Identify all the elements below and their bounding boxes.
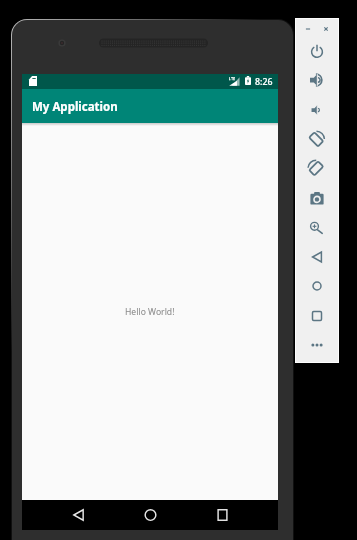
- button[interactable]: Back: [308, 248, 326, 266]
- button[interactable]: Screenshot: [308, 189, 326, 207]
- button[interactable]: Home: [308, 277, 326, 295]
- button[interactable]: Minimize: [302, 23, 314, 35]
- staticText: Hello World!: [125, 306, 175, 318]
- button[interactable]: Recents: [207, 500, 237, 530]
- button[interactable]: Power: [308, 42, 326, 60]
- button[interactable]: My Application: [22, 89, 278, 123]
- staticText: My Application: [32, 99, 118, 115]
- button[interactable]: Volume up: [308, 71, 326, 89]
- button[interactable]: Volume down: [308, 101, 326, 119]
- button[interactable]: Close: [320, 23, 332, 35]
- button[interactable]: Back: [63, 500, 93, 530]
- button[interactable]: Rotate left: [308, 130, 326, 148]
- button[interactable]: More: [308, 336, 326, 354]
- button[interactable]: Rotate right: [308, 159, 326, 177]
- staticText: 8:26: [255, 76, 273, 88]
- button[interactable]: Zoom: [308, 219, 326, 237]
- button[interactable]: Home: [135, 500, 165, 530]
- button[interactable]: Overview: [308, 307, 326, 325]
